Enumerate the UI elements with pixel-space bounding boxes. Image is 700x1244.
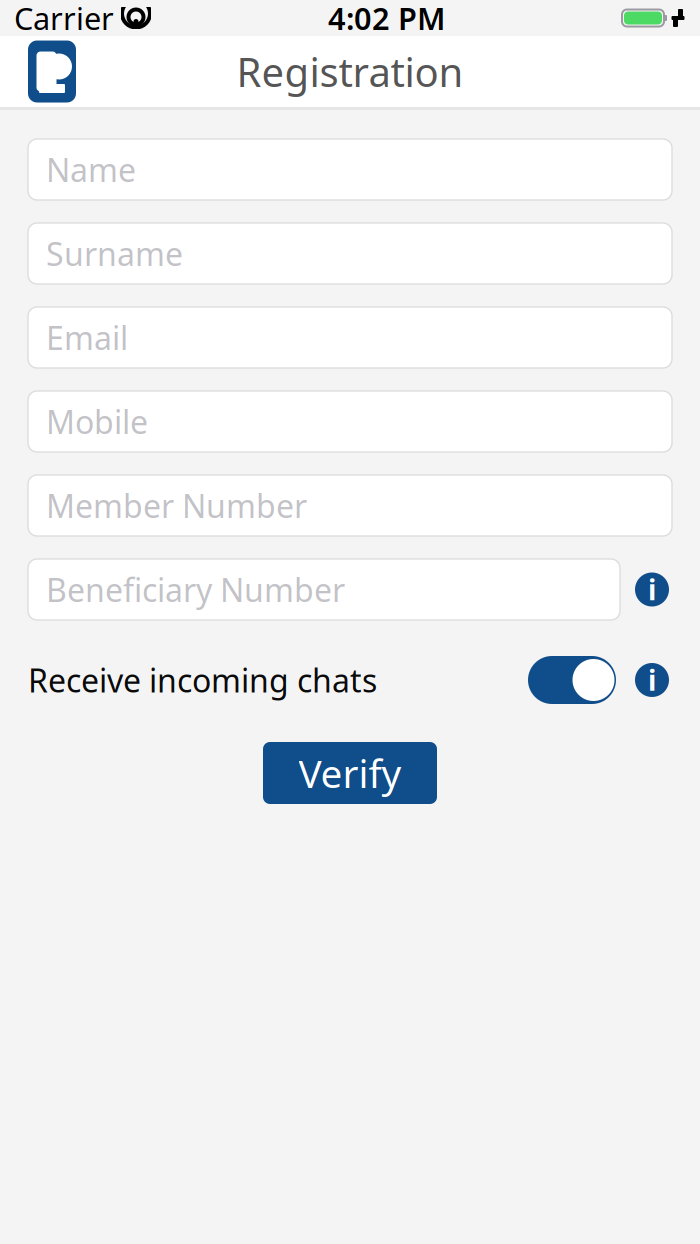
button[interactable]: Name bbox=[28, 139, 672, 200]
button[interactable]: Surname bbox=[28, 223, 672, 284]
button[interactable]: More information bbox=[632, 569, 672, 609]
button[interactable]: Mobile bbox=[28, 391, 672, 452]
staticText: i bbox=[648, 661, 656, 699]
staticText: Surname bbox=[46, 232, 183, 275]
staticText: Verify bbox=[298, 747, 401, 799]
staticText: Beneficiary Number bbox=[46, 568, 345, 611]
staticText: i bbox=[648, 571, 656, 608]
staticText: Registration bbox=[236, 45, 463, 98]
staticText: Name bbox=[46, 148, 136, 191]
staticText: Member Number bbox=[46, 484, 307, 527]
button[interactable]: Verify bbox=[263, 742, 437, 804]
button[interactable]: Receive incoming chats, on bbox=[528, 656, 616, 704]
staticText: Receive incoming chats bbox=[28, 659, 377, 701]
button[interactable]: More information bbox=[632, 660, 672, 700]
button[interactable]: Member Number bbox=[28, 475, 672, 536]
button[interactable]: Email bbox=[28, 307, 672, 368]
staticText: Carrier bbox=[14, 0, 114, 38]
staticText: 4:02 PM bbox=[328, 0, 445, 38]
button[interactable]: Sanlam Chat home bbox=[0, 40, 76, 102]
button[interactable]: Beneficiary Number bbox=[28, 559, 620, 620]
staticText: Email bbox=[46, 316, 128, 359]
staticText: Mobile bbox=[46, 400, 148, 443]
